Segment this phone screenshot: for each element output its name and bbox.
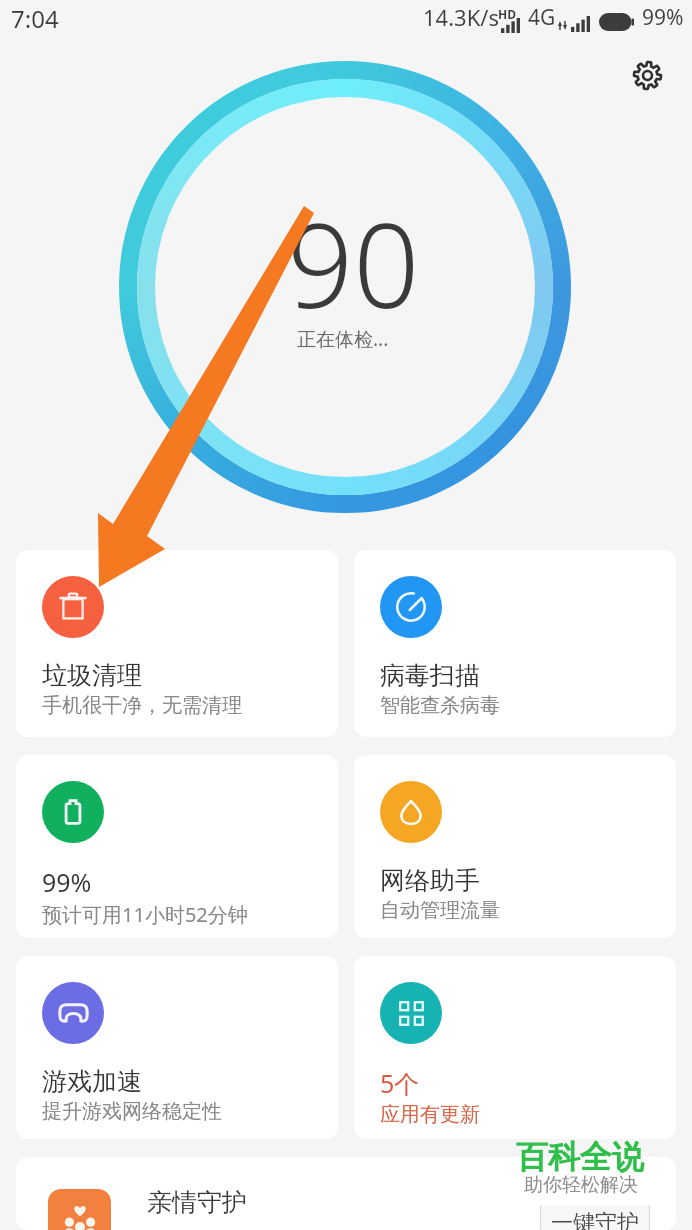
staticText: 病毒扫描 — [380, 660, 480, 691]
staticText: 7:04 — [11, 2, 59, 35]
button[interactable]: 5个 — [354, 956, 676, 1139]
staticText: 垃圾清理 — [42, 660, 142, 691]
button[interactable]: 病毒扫描 — [354, 550, 676, 737]
staticText: 99% — [42, 865, 92, 899]
staticText: 4G — [528, 3, 556, 32]
staticText: 亲情守护 — [147, 1187, 247, 1218]
button[interactable]: 亲情守护 — [16, 1157, 676, 1230]
staticText: 90 — [287, 184, 420, 342]
button[interactable]: 垃圾清理 — [16, 550, 338, 737]
staticText: 14.3K/s — [423, 2, 499, 32]
staticText: 应用有更新 — [380, 1102, 480, 1127]
staticText: 智能查杀病毒 — [380, 693, 500, 718]
staticText: HD — [498, 6, 516, 22]
button[interactable]: 网络助手 — [354, 755, 676, 938]
staticText: 99% — [642, 3, 684, 32]
staticText: 百科全说 — [516, 1137, 644, 1177]
staticText: 预计可用11小时52分钟 — [42, 901, 248, 928]
button[interactable]: 一键守护 — [540, 1205, 650, 1230]
button[interactable]: Settings — [625, 53, 669, 97]
staticText: 正在体检... — [297, 326, 389, 352]
staticText: 提升游戏网络稳定性 — [42, 1099, 222, 1124]
staticText: 游戏加速 — [42, 1066, 142, 1097]
staticText: 助你轻松解决 — [524, 1173, 638, 1197]
button[interactable]: 游戏加速 — [16, 956, 338, 1139]
staticText: 手机很干净，无需清理 — [42, 693, 242, 718]
button[interactable]: 99% — [16, 755, 338, 938]
staticText: 5个 — [380, 1066, 420, 1100]
staticText: 网络助手 — [380, 865, 480, 896]
staticText: 一键守护 — [551, 1209, 639, 1230]
staticText: 自动管理流量 — [380, 898, 500, 923]
